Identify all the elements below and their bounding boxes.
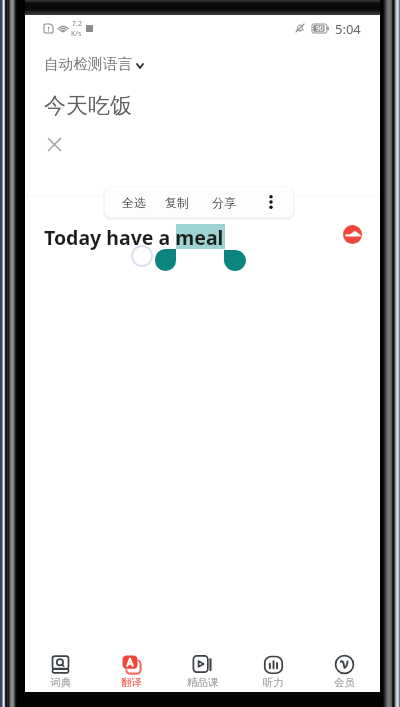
staticText: 分享 [212,195,236,210]
staticText: 翻译 [121,676,142,689]
button[interactable]: 精品课 [167,651,238,692]
staticText: 5:04 [335,20,361,38]
button[interactable]: Play pronunciation [343,225,362,244]
staticText: 词典 [50,676,71,689]
button[interactable]: 分享 [200,187,248,217]
button[interactable]: 自动检测语言 [44,55,143,74]
button[interactable]: 复制 [153,187,201,217]
staticText: 自动检测语言 [44,55,133,74]
staticText: 今天吃饭 [44,92,132,120]
button[interactable]: Clear [42,132,66,156]
staticText: 复制 [165,195,189,210]
button[interactable]: 全选 [110,187,158,217]
staticText: 90 [316,24,324,33]
button[interactable]: 词典 [25,651,96,692]
staticText: 7.2 [72,19,82,29]
staticText: 会员 [334,676,355,689]
staticText: 听力 [263,676,284,689]
button[interactable]: More options [250,187,291,217]
button[interactable]: 听力 [238,651,309,692]
staticText: K/s [71,29,82,39]
staticText: 精品课 [187,676,219,689]
button[interactable]: 翻译 [96,651,167,692]
staticText: Today have a meal [44,224,224,251]
staticText: 全选 [122,195,146,210]
button[interactable]: 会员 [309,651,380,692]
